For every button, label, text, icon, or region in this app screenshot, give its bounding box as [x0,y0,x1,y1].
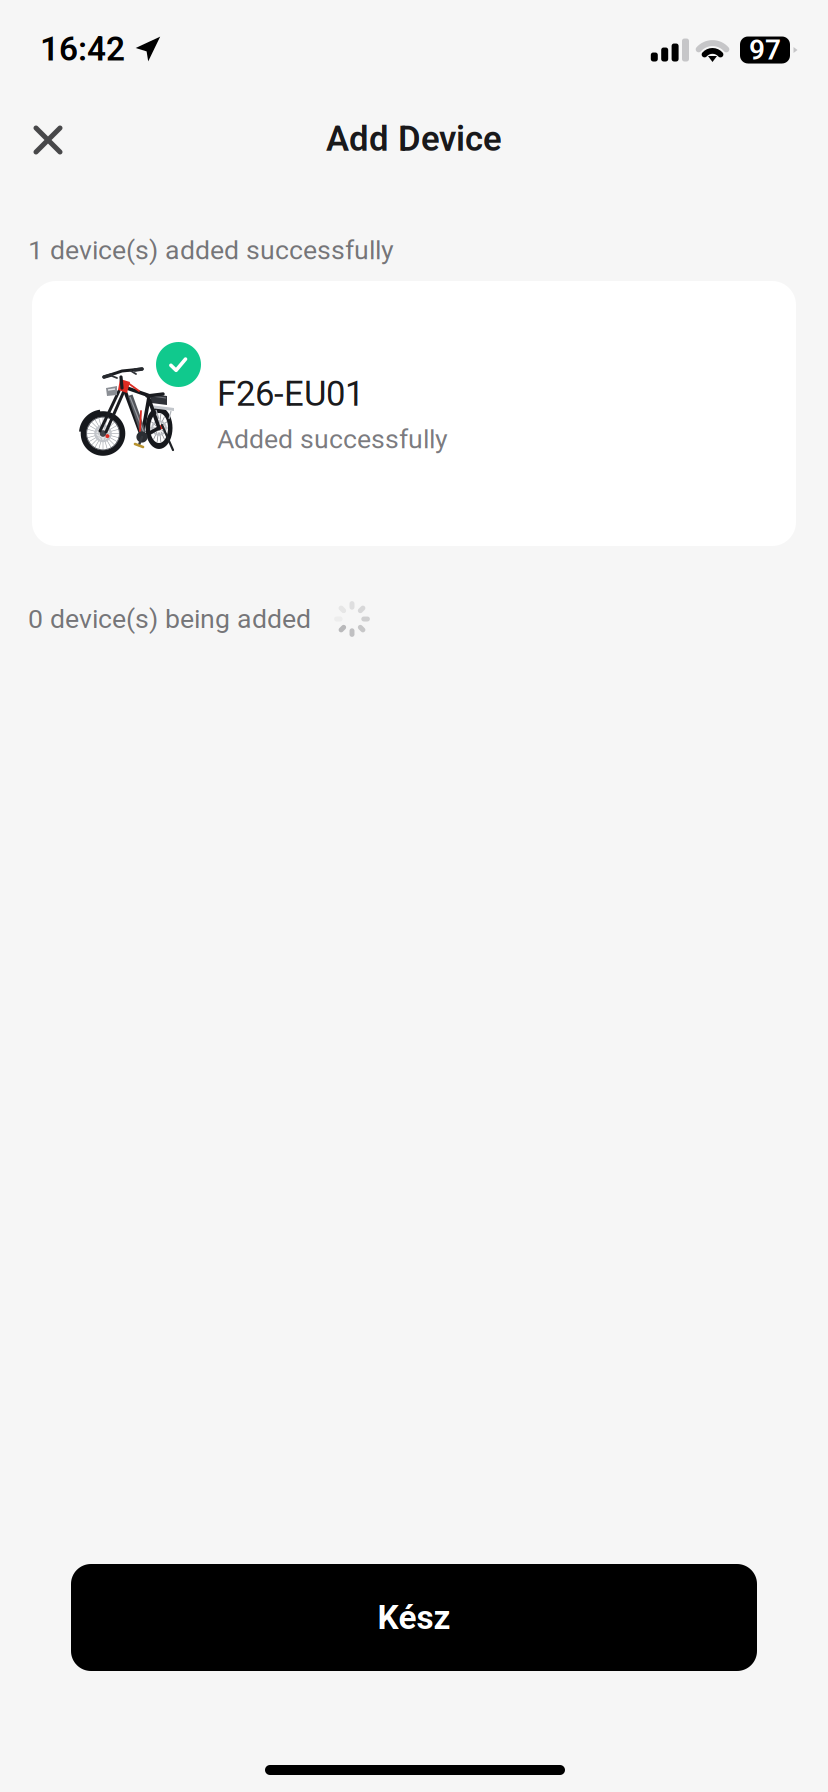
staticText: 97 [749,34,781,66]
button[interactable]: Close [16,108,80,172]
staticText: Kész [377,1598,450,1637]
staticText: 16:42 [40,30,125,68]
staticText: Added successfully [217,424,448,454]
staticText: F26-EU01 [217,374,364,414]
staticText: Add Device [326,119,502,159]
button[interactable]: Kész [71,1564,757,1671]
staticText: 0 device(s) being added [28,604,311,634]
staticText: 1 device(s) added successfully [28,235,394,265]
